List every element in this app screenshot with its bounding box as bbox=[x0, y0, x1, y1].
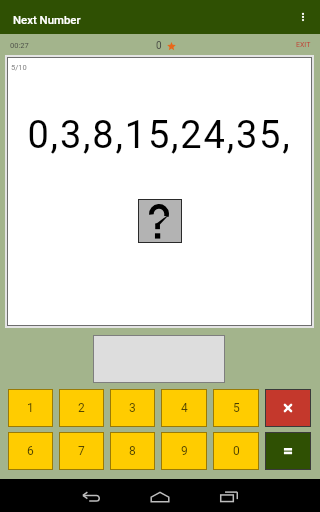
button[interactable]: 0 bbox=[213, 432, 259, 470]
staticText: 7 bbox=[78, 444, 85, 458]
staticText: 0 bbox=[156, 40, 162, 52]
button[interactable]: Answer field bbox=[93, 335, 225, 383]
staticText: 8 bbox=[129, 444, 136, 458]
staticText: 9 bbox=[181, 444, 188, 458]
staticText: 1 bbox=[27, 401, 34, 415]
staticText: 5 bbox=[233, 401, 240, 415]
button[interactable]: Home bbox=[127, 479, 193, 512]
button[interactable]: Equals bbox=[265, 432, 311, 470]
button[interactable]: Recent apps bbox=[196, 479, 262, 512]
button[interactable]: 4 bbox=[161, 389, 207, 427]
staticText: 2 bbox=[78, 401, 85, 415]
button[interactable]: Back bbox=[58, 479, 124, 512]
button[interactable]: 3 bbox=[110, 389, 155, 427]
button[interactable]: 8 bbox=[110, 432, 155, 470]
button[interactable]: 9 bbox=[161, 432, 207, 470]
button[interactable]: Clear bbox=[265, 389, 311, 427]
staticText: 00:27 bbox=[10, 41, 29, 50]
button[interactable]: 5 bbox=[213, 389, 259, 427]
staticText: Next Number bbox=[13, 13, 81, 26]
staticText: 0 bbox=[233, 444, 240, 458]
staticText: 6 bbox=[27, 444, 34, 458]
staticText: 5/10 bbox=[11, 63, 27, 72]
button[interactable]: 7 bbox=[59, 432, 104, 470]
button[interactable]: 6 bbox=[8, 432, 53, 470]
staticText: 4 bbox=[181, 401, 188, 415]
staticText: 3 bbox=[129, 401, 136, 415]
button[interactable]: More options bbox=[286, 0, 320, 34]
button[interactable]: EXIT bbox=[296, 41, 311, 49]
staticText: 0,3,8,15,24,35, bbox=[27, 113, 292, 158]
button[interactable]: 1 bbox=[8, 389, 53, 427]
button[interactable]: 2 bbox=[59, 389, 104, 427]
